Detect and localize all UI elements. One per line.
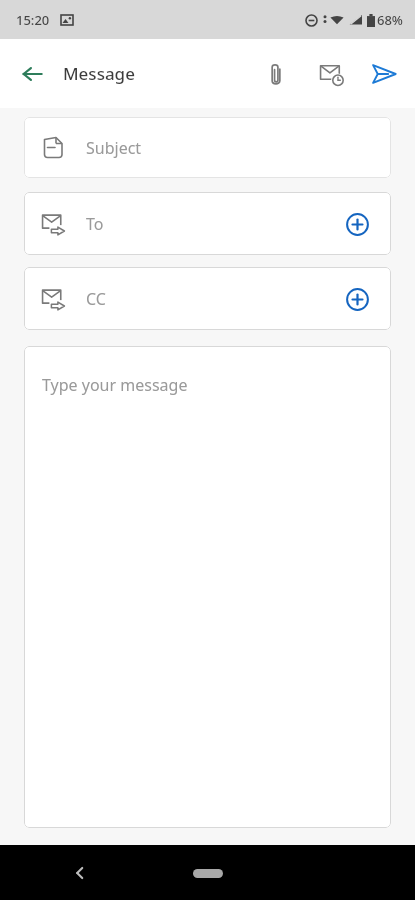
button[interactable]: Add CC recipient [340,282,374,316]
button[interactable]: Send [361,51,407,97]
button[interactable]: Type your message [24,346,391,828]
staticText: Message [63,62,135,85]
button[interactable]: Add To recipient [340,207,374,241]
button[interactable]: Schedule send [309,51,355,97]
button[interactable]: Subject [24,117,391,178]
staticText: To [86,213,104,235]
button[interactable]: CC [24,267,391,330]
staticText: 68% [377,11,403,29]
button[interactable]: To [24,192,391,255]
staticText: 15:20 [16,11,50,29]
button[interactable]: Attach file [253,51,299,97]
button[interactable]: Home [177,861,239,885]
button[interactable]: Back [58,851,102,895]
staticText: CC [86,288,106,310]
button[interactable]: Back [10,52,54,96]
staticText: Subject [86,137,142,159]
staticText: Type your message [42,374,188,396]
